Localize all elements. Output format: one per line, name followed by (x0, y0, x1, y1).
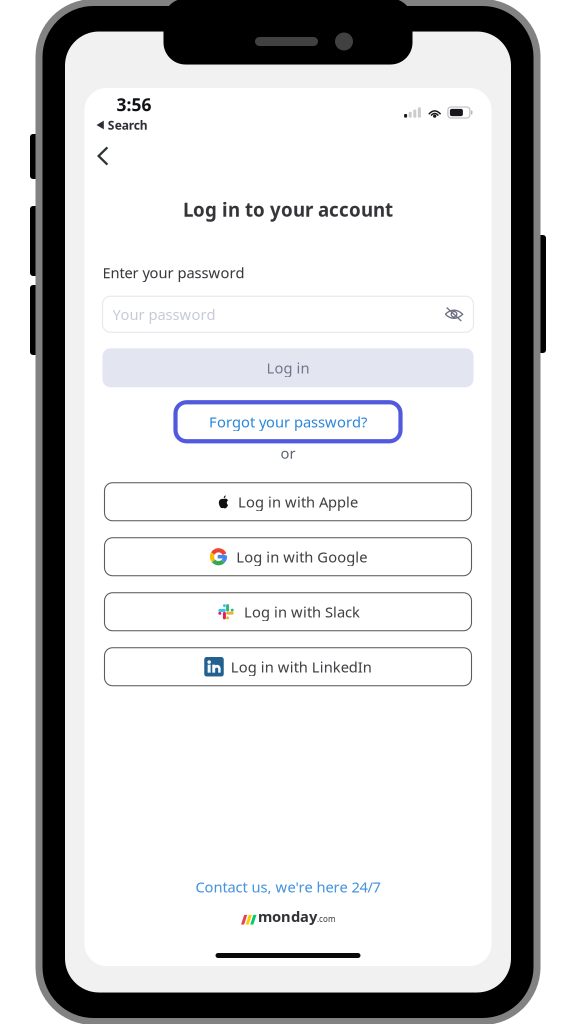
staticText: Enter your password (102, 263, 244, 282)
button[interactable]: Log in with Slack (104, 593, 471, 631)
staticText: Contact us, we're here 24/7 (195, 877, 380, 896)
staticText: 3:56 (116, 93, 151, 116)
button[interactable]: Show password (444, 307, 463, 322)
staticText: Search (108, 117, 148, 133)
staticText: Your password (112, 304, 215, 324)
staticText: Log in to your account (183, 197, 393, 222)
button[interactable]: Contact us, we're here 24/7 (195, 877, 380, 896)
staticText: monday (258, 906, 317, 926)
staticText: .com (317, 914, 335, 924)
staticText: Log in with LinkedIn (231, 657, 372, 676)
staticText: Log in with Slack (244, 602, 360, 621)
button[interactable]: Forgot your password? (175, 402, 400, 441)
button[interactable]: Log in (102, 348, 473, 387)
button[interactable]: Log in with LinkedIn (104, 648, 471, 686)
button[interactable]: Back (84, 143, 137, 169)
button[interactable]: Log in with Google (104, 538, 471, 576)
staticText: Forgot your password? (209, 412, 367, 431)
staticText: Log in (266, 358, 309, 377)
staticText: Log in with Apple (238, 492, 358, 511)
staticText: Log in with Google (236, 547, 367, 566)
staticText: or (280, 443, 295, 463)
button[interactable]: Log in with Apple (104, 483, 471, 521)
